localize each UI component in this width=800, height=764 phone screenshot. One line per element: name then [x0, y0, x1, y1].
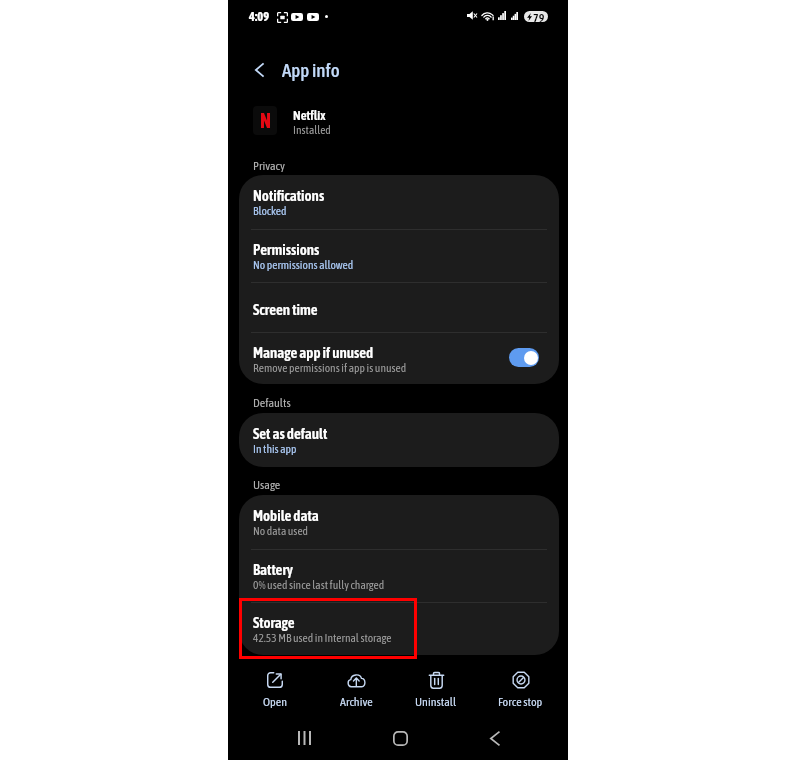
staticText: Permissions [253, 241, 320, 258]
button[interactable]: Back [471, 718, 519, 758]
button[interactable]: Archive [318, 666, 394, 712]
staticText: 79 [533, 11, 545, 22]
staticText: Usage [253, 478, 281, 492]
button[interactable]: Force stop [482, 666, 558, 712]
staticText: Manage app if unused [253, 344, 374, 361]
staticText: Blocked [253, 204, 287, 217]
button[interactable]: Back [245, 55, 275, 85]
staticText: Netflix [293, 108, 326, 123]
staticText: In this app [253, 442, 297, 455]
staticText: 0% used since last fully charged [253, 578, 385, 591]
staticText: Mobile data [253, 507, 319, 524]
button[interactable]: Screen time [239, 282, 559, 334]
staticText: Force stop [498, 695, 543, 709]
button[interactable]: Notifications [239, 175, 559, 227]
staticText: Remove permissions if app is unused [253, 361, 407, 374]
button[interactable]: Uninstall [398, 666, 474, 712]
staticText: Notifications [253, 187, 325, 204]
button[interactable]: Manage app if unused [239, 332, 559, 384]
staticText: Battery [253, 561, 293, 578]
staticText: Defaults [253, 396, 291, 410]
staticText: Uninstall [415, 695, 457, 709]
button[interactable]: Storage [239, 602, 559, 654]
button[interactable]: Mobile data [239, 495, 559, 547]
staticText: Open [263, 695, 287, 709]
staticText: 42.53 MB used in Internal storage [253, 631, 392, 644]
button[interactable]: Manage app if unused [509, 348, 539, 367]
button[interactable]: Recent apps [280, 718, 328, 758]
button[interactable]: Home [376, 718, 424, 758]
staticText: App info [282, 59, 340, 81]
staticText: 4:09 [249, 9, 270, 23]
button[interactable]: Permissions [239, 229, 559, 281]
button[interactable]: Battery [239, 549, 559, 601]
staticText: Installed [293, 123, 331, 136]
button[interactable]: Set as default [239, 413, 559, 465]
staticText: No data used [253, 524, 309, 537]
staticText: Storage [253, 614, 295, 631]
staticText: No permissions allowed [253, 258, 354, 271]
staticText: Archive [340, 695, 373, 709]
staticText: Screen time [253, 301, 318, 318]
staticText: Set as default [253, 425, 328, 442]
button[interactable]: Open [237, 666, 313, 712]
staticText: Privacy [253, 159, 285, 173]
